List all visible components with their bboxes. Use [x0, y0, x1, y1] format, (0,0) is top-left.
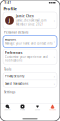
staticText: Account [5, 38, 16, 41]
button[interactable]: Privacy Security [3, 72, 57, 80]
button[interactable]: J [3, 12, 57, 29]
staticText: Profile [3, 6, 16, 11]
button[interactable]: Search [0, 105, 15, 111]
staticText: 9:41 [4, 1, 11, 4]
button[interactable]: Preferences [3, 49, 57, 64]
staticText: Saved [35, 109, 40, 111]
button[interactable]: Account [45, 105, 60, 111]
button[interactable]: Saved [30, 105, 45, 111]
staticText: › [54, 81, 55, 86]
button[interactable]: Profile [15, 105, 30, 111]
staticText: Settings [4, 90, 15, 94]
staticText: › [54, 39, 55, 44]
staticText: Saved Transactions [5, 82, 28, 85]
staticText: Preferences [5, 51, 22, 55]
staticText: Tools [4, 68, 11, 71]
staticText: › [54, 54, 55, 59]
staticText: Account [49, 109, 55, 111]
staticText: Profile [20, 109, 25, 111]
staticText: › [54, 73, 55, 79]
staticText: Customise your experience and notificati… [5, 55, 48, 62]
staticText: Search [4, 109, 10, 111]
staticText: › [54, 18, 55, 23]
staticText: Manage your name and contact info [5, 42, 53, 45]
staticText: Jamie Chen [16, 14, 34, 18]
staticText: J [8, 17, 10, 24]
staticText: Member since 2021 [16, 23, 44, 26]
staticText: jamie.chen@email.com [16, 19, 46, 22]
button[interactable]: Saved Transactions [3, 80, 57, 87]
staticText: Personal details [4, 31, 28, 34]
staticText: Privacy Security [5, 74, 24, 78]
button[interactable]: Account [3, 36, 57, 47]
